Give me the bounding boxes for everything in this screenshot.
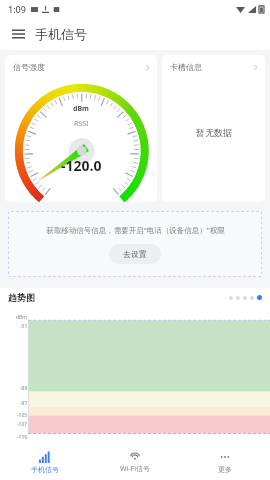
staticText: 信号强度 — [13, 62, 45, 72]
staticText: 更多 — [218, 465, 232, 474]
button[interactable]: 趋势图 — [0, 288, 270, 303]
button[interactable]: 信号强度 — [5, 55, 157, 74]
staticText: 1:09 — [8, 3, 26, 15]
button[interactable]: 去设置 — [109, 244, 161, 264]
button[interactable]: 卡槽信息 — [162, 55, 265, 74]
staticText: -119 — [17, 434, 28, 441]
button[interactable]: 信号强度 — [5, 55, 157, 202]
other: More — [254, 64, 258, 71]
other: More — [146, 64, 150, 71]
staticText: -97 — [20, 400, 28, 407]
button[interactable]: Menu — [6, 22, 30, 46]
staticText: -105 — [17, 412, 28, 419]
staticText: dBm — [16, 314, 28, 321]
staticText: Wi-Fi信号 — [120, 464, 151, 474]
button[interactable]: 更多 — [180, 444, 270, 480]
staticText: -51 — [20, 323, 28, 330]
button[interactable]: 手机信号 — [0, 444, 90, 480]
staticText: 趋势图 — [8, 292, 35, 303]
staticText: 手机信号 — [35, 26, 87, 42]
staticText: 获取移动信号信息，需要开启"电话（设备信息）"权限 — [46, 225, 225, 235]
staticText: 手机信号 — [31, 465, 59, 474]
button[interactable]: Wi-Fi信号 — [90, 444, 180, 480]
staticText: 卡槽信息 — [170, 62, 202, 72]
staticText: dBm — [73, 104, 89, 114]
staticText: -120.0 — [61, 156, 102, 175]
button[interactable]: 卡槽信息 — [162, 55, 265, 202]
staticText: 去设置 — [123, 249, 147, 259]
staticText: RSSI — [74, 119, 89, 129]
staticText: 暂无数据 — [196, 127, 232, 138]
staticText: -107 — [17, 421, 28, 428]
staticText: -89 — [20, 385, 28, 392]
